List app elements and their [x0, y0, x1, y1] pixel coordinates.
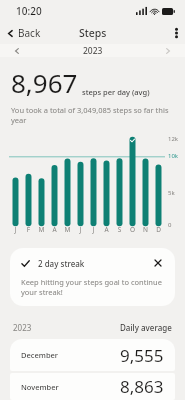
staticText: 10:20 [16, 4, 42, 18]
staticText: Daily average [120, 322, 172, 333]
staticText: A [100, 225, 113, 234]
button[interactable]: Back [0, 23, 49, 43]
staticText: J [74, 225, 87, 234]
staticText: December [21, 350, 59, 360]
button[interactable]: November [10, 373, 175, 400]
staticText: Steps [79, 26, 107, 40]
staticText: 2023 [83, 45, 103, 57]
button[interactable]: Previous year [0, 45, 34, 57]
staticText: You took a total of 3,049,085 steps so f… [11, 105, 174, 125]
staticText: 12k [168, 135, 179, 143]
staticText: Keep hitting your steps goal to continue… [21, 277, 164, 297]
staticText: steps per day (avg) [82, 87, 150, 97]
staticText: M [35, 225, 48, 234]
button[interactable]: December [10, 339, 175, 371]
staticText: A [48, 225, 61, 234]
staticText: J [87, 225, 100, 234]
button[interactable]: 2 day streak [10, 248, 175, 306]
staticText: 5k [168, 189, 175, 197]
staticText: D [152, 225, 165, 234]
staticText: 10k [168, 152, 179, 160]
staticText: November [21, 382, 59, 392]
staticText: 8,863 [120, 375, 164, 398]
staticText: Back [18, 26, 41, 40]
staticText: 2 day streak [38, 258, 85, 269]
staticText: F [22, 225, 35, 234]
staticText: 2023 [13, 322, 32, 333]
staticText: J [9, 225, 22, 234]
staticText: O [126, 225, 139, 234]
staticText: 9,555 [120, 344, 164, 367]
button[interactable]: Next year [151, 45, 185, 57]
staticText: 8,967 [11, 65, 78, 100]
button[interactable]: More options [168, 23, 185, 43]
staticText: N [139, 225, 152, 234]
staticText: 0 [168, 221, 172, 229]
staticText: M [61, 225, 74, 234]
staticText: S [113, 225, 126, 234]
button[interactable]: Dismiss [152, 257, 164, 269]
